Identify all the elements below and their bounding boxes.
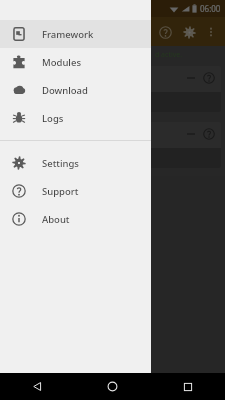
button[interactable]: Modules: [0, 48, 151, 76]
staticText: Settings: [42, 157, 79, 170]
button[interactable]: [4, 122, 221, 168]
button[interactable]: Home: [75, 373, 150, 400]
button[interactable]: Help: [153, 20, 177, 44]
button[interactable]: [4, 66, 221, 112]
button[interactable]: Recents: [150, 373, 225, 400]
button[interactable]: Support: [0, 177, 151, 205]
staticText: 06:00: [200, 3, 221, 14]
staticText: Support: [42, 185, 79, 198]
button[interactable]: Settings: [177, 20, 201, 44]
button[interactable]: About: [0, 205, 151, 233]
button[interactable]: Back: [0, 373, 75, 400]
staticText: About: [42, 213, 70, 226]
staticText: Framework: [42, 28, 94, 41]
button[interactable]: More options: [201, 22, 221, 42]
button[interactable]: Framework: [0, 20, 151, 48]
button[interactable]: Settings: [0, 149, 151, 177]
staticText: Modules: [42, 56, 82, 69]
staticText: Logs: [42, 112, 64, 125]
staticText: d active.: [155, 50, 183, 60]
staticText: Download: [42, 84, 88, 97]
button[interactable]: Logs: [0, 104, 151, 132]
button[interactable]: Download: [0, 76, 151, 104]
